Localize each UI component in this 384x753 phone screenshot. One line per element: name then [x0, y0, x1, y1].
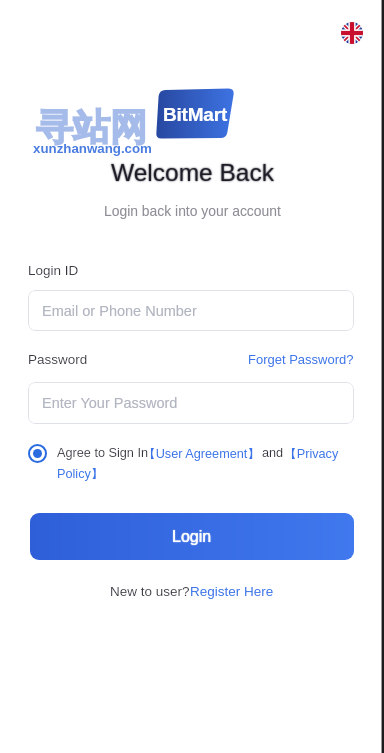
staticText: New to user? [110, 584, 190, 599]
staticText: Enter Your Password [42, 395, 178, 411]
button[interactable] [28, 444, 47, 463]
button[interactable]: Email or Phone Number [28, 290, 354, 331]
staticText: Login back into your account [104, 203, 281, 219]
staticText: BitMart [163, 104, 228, 125]
staticText: 【Privacy [284, 446, 339, 462]
staticText: Login [172, 528, 212, 546]
button[interactable] [341, 22, 363, 44]
staticText: Welcome Back [111, 159, 274, 186]
staticText: Agree to Sign In [57, 446, 148, 460]
button[interactable]: Forget Password? [248, 352, 354, 367]
button[interactable]: Policy】 [57, 466, 104, 482]
staticText: and [262, 446, 284, 460]
staticText: xunzhanwang.com [33, 141, 152, 156]
staticText: Email or Phone Number [42, 303, 197, 319]
button[interactable]: Enter Your Password [28, 382, 354, 424]
button[interactable]: Register Here [190, 584, 274, 599]
button[interactable]: Login [30, 513, 354, 560]
staticText: Password [28, 352, 88, 367]
staticText: 寻站网 [36, 104, 147, 151]
button[interactable]: 【User Agreement】 [143, 446, 261, 462]
staticText: Login ID [28, 263, 79, 278]
